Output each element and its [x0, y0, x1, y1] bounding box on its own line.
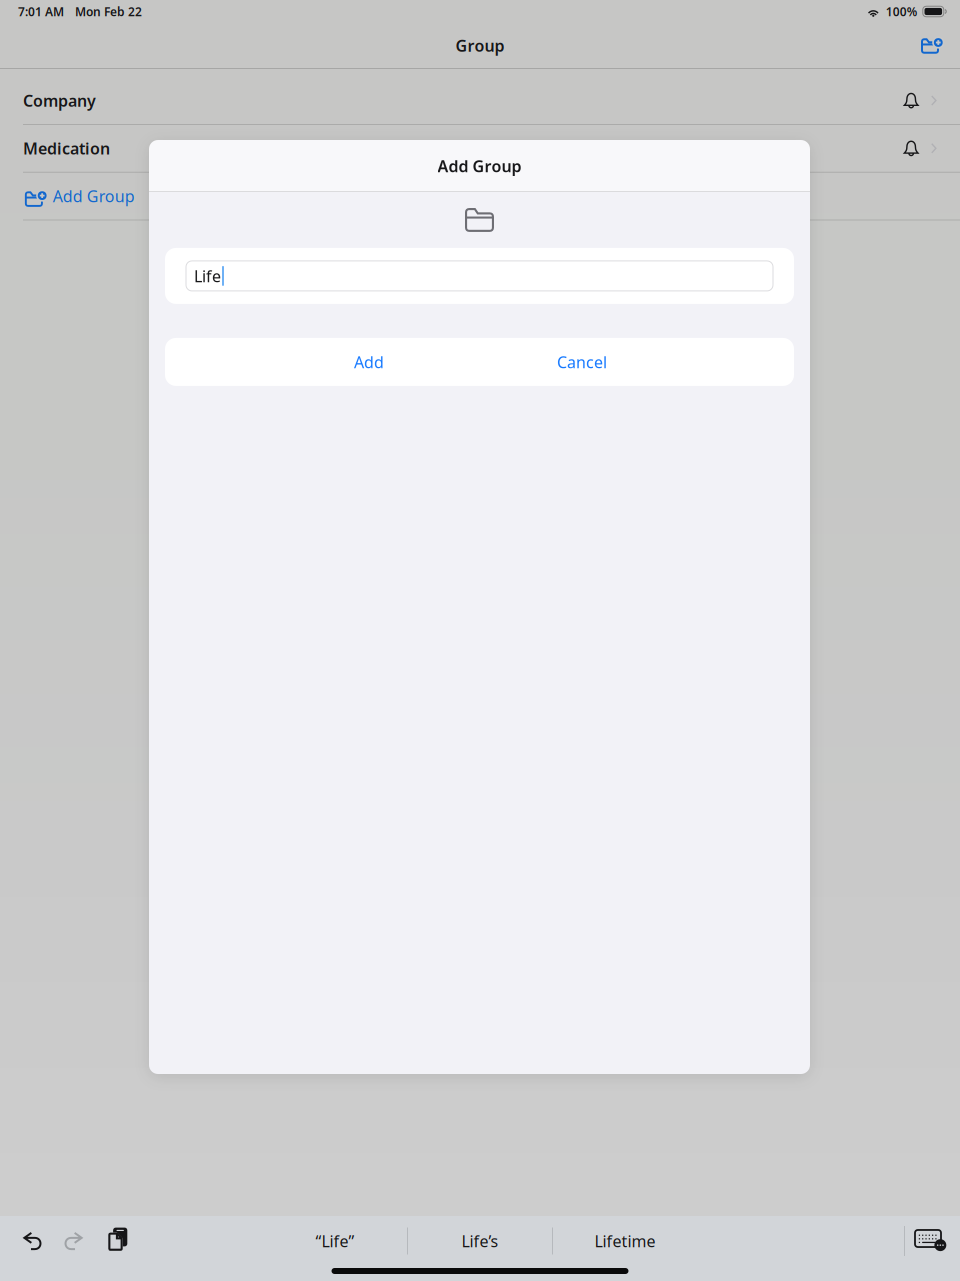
staticText: Add Group	[437, 155, 521, 177]
button[interactable]: Lifetime	[553, 1224, 697, 1258]
button[interactable]: Paste	[94, 1223, 137, 1259]
button[interactable]: Cancel	[517, 338, 647, 386]
staticText: Add Group	[53, 185, 135, 207]
button[interactable]: Company	[0, 77, 960, 124]
staticText: Life’s	[461, 1230, 498, 1252]
button[interactable]: Undo	[12, 1223, 53, 1259]
staticText: Lifetime	[594, 1230, 655, 1252]
staticText: Cancel	[557, 351, 607, 372]
staticText: Mon Feb 22	[75, 3, 142, 19]
button[interactable]: Life’s	[408, 1224, 552, 1258]
button[interactable]: Medication	[0, 125, 960, 172]
staticText: 100%	[886, 3, 918, 19]
staticText: 7:01 AM	[18, 3, 64, 19]
button[interactable]: Add	[314, 338, 424, 386]
staticText: Add	[354, 351, 384, 372]
button[interactable]: “Life”	[263, 1224, 407, 1258]
staticText: Group	[455, 35, 504, 56]
staticText: Medication	[23, 138, 110, 159]
button[interactable]: Add Group	[0, 173, 960, 220]
staticText: “Life”	[315, 1230, 354, 1252]
button[interactable]: Hide Keyboard	[905, 1220, 951, 1256]
button[interactable]: Redo	[53, 1223, 94, 1259]
staticText: Company	[23, 90, 96, 111]
button[interactable]: New Group	[908, 24, 952, 68]
staticText: Life	[194, 265, 221, 286]
